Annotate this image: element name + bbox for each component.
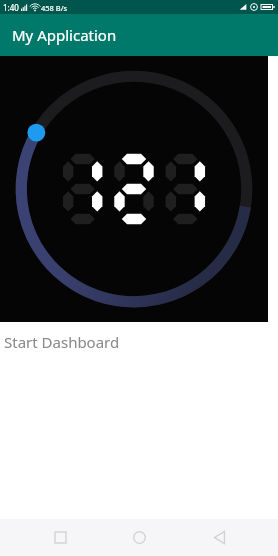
staticText: 458 B/s [41, 3, 68, 13]
button[interactable]: Start Dashboard [0, 332, 278, 352]
button[interactable]: Speed gauge 121 [0, 56, 268, 322]
staticText: 1:40 [3, 2, 19, 13]
button[interactable]: Back [199, 519, 239, 556]
button[interactable]: Recent apps [40, 519, 80, 556]
button[interactable]: Home [119, 519, 159, 556]
staticText: My Application [12, 25, 117, 45]
